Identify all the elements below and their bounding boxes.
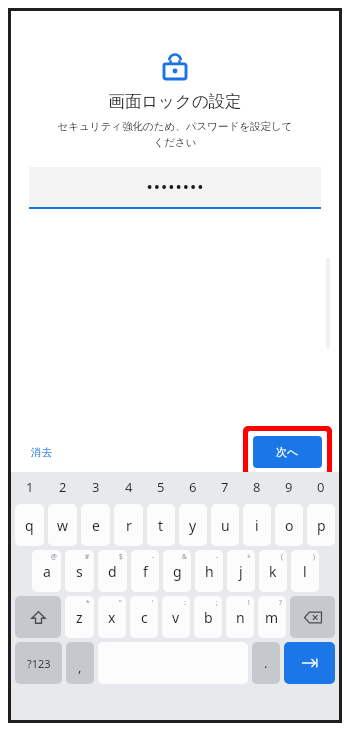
button[interactable]: 9 [273,472,305,502]
staticText: m [265,608,279,627]
staticText: g [173,562,182,581]
staticText: : [184,598,186,607]
staticText: s [76,562,83,581]
staticText: c [141,608,148,627]
staticText: o [285,516,294,535]
staticText: ; [216,598,218,607]
button[interactable]: x [98,596,126,638]
button[interactable]: f [131,550,159,592]
button[interactable]: e [81,504,110,546]
staticText: @ [51,552,57,561]
button[interactable]: Enter [284,642,335,684]
staticText: . [264,654,268,672]
staticText: l [303,562,307,581]
button[interactable]: s [65,550,94,592]
button[interactable] [29,167,321,209]
staticText: ' [152,598,154,607]
staticText: h [205,562,214,581]
staticText: v [172,608,180,627]
staticText: p [317,516,326,535]
button[interactable]: 0 [305,472,337,502]
button[interactable]: v [162,596,190,638]
staticText: r [126,516,132,535]
staticText: n [236,608,245,627]
staticText: 消去 [31,446,52,459]
button[interactable]: u [211,504,239,546]
button[interactable]: a [32,550,61,592]
button[interactable]: 3 [79,472,112,502]
staticText: 7 [221,478,229,496]
staticText: 3 [92,478,100,496]
staticText: 0 [317,478,325,496]
button[interactable]: w [48,504,77,546]
button[interactable]: g [163,550,191,592]
staticText: セキュリティ強化のため、パスワードを設定して ください [29,120,321,149]
button[interactable]: l [291,550,319,592]
button[interactable]: b [194,596,222,638]
button[interactable]: h [195,550,223,592]
button[interactable]: i [243,504,271,546]
button[interactable]: Shift [15,596,61,638]
button[interactable]: 5 [145,472,177,502]
button[interactable]: . [252,642,280,684]
button[interactable]: z [65,596,94,638]
button[interactable]: d [98,550,127,592]
staticText: i [255,516,259,535]
staticText: ! [248,598,250,607]
staticText: ?123 [27,656,51,671]
button[interactable]: Backspace [290,596,335,638]
button[interactable]: k [259,550,287,592]
button[interactable]: r [114,504,143,546]
staticText: # [85,552,90,561]
staticText: y [189,516,197,535]
button[interactable]: t [147,504,175,546]
staticText: & [182,552,187,561]
staticText: , [78,658,82,676]
button[interactable]: 8 [241,472,273,502]
staticText: $ [119,552,123,561]
button[interactable]: 7 [209,472,241,502]
staticText: u [221,516,230,535]
staticText: 8 [253,478,261,496]
button[interactable]: 消去 [25,442,58,463]
staticText: + [247,552,251,561]
staticText: 画面ロックの設定 [11,91,339,112]
button[interactable]: c [130,596,158,638]
button[interactable]: q [15,504,44,546]
staticText: * [86,598,90,607]
button[interactable]: 1 [13,472,46,502]
staticText: d [108,562,117,581]
staticText: ( [281,552,283,561]
button[interactable]: 6 [177,472,209,502]
staticText: - [216,552,219,561]
button[interactable]: ?123 [15,642,62,684]
staticText: 1 [26,478,34,496]
staticText: 4 [125,478,133,496]
staticText: e [92,516,100,535]
button[interactable]: 4 [112,472,145,502]
button[interactable]: j [227,550,255,592]
staticText: 9 [285,478,293,496]
button[interactable]: n [226,596,254,638]
staticText: ? [279,598,282,607]
staticText: 2 [59,478,67,496]
staticText: j [239,562,243,581]
staticText: 次へ [276,445,299,459]
staticText: q [25,516,34,535]
button[interactable]: y [179,504,207,546]
staticText: f [143,562,148,581]
staticText: k [269,562,277,581]
button[interactable]: 次へ [253,436,322,468]
staticText: b [204,608,213,627]
button[interactable]: 2 [46,472,79,502]
button[interactable]: p [307,504,335,546]
button[interactable]: , [66,642,94,684]
staticText: ) [313,552,315,561]
staticText: 5 [157,478,165,496]
staticText: a [43,562,51,581]
staticText: z [76,608,83,627]
button[interactable]: m [258,596,286,638]
staticText: - [152,552,155,561]
button[interactable]: o [275,504,303,546]
